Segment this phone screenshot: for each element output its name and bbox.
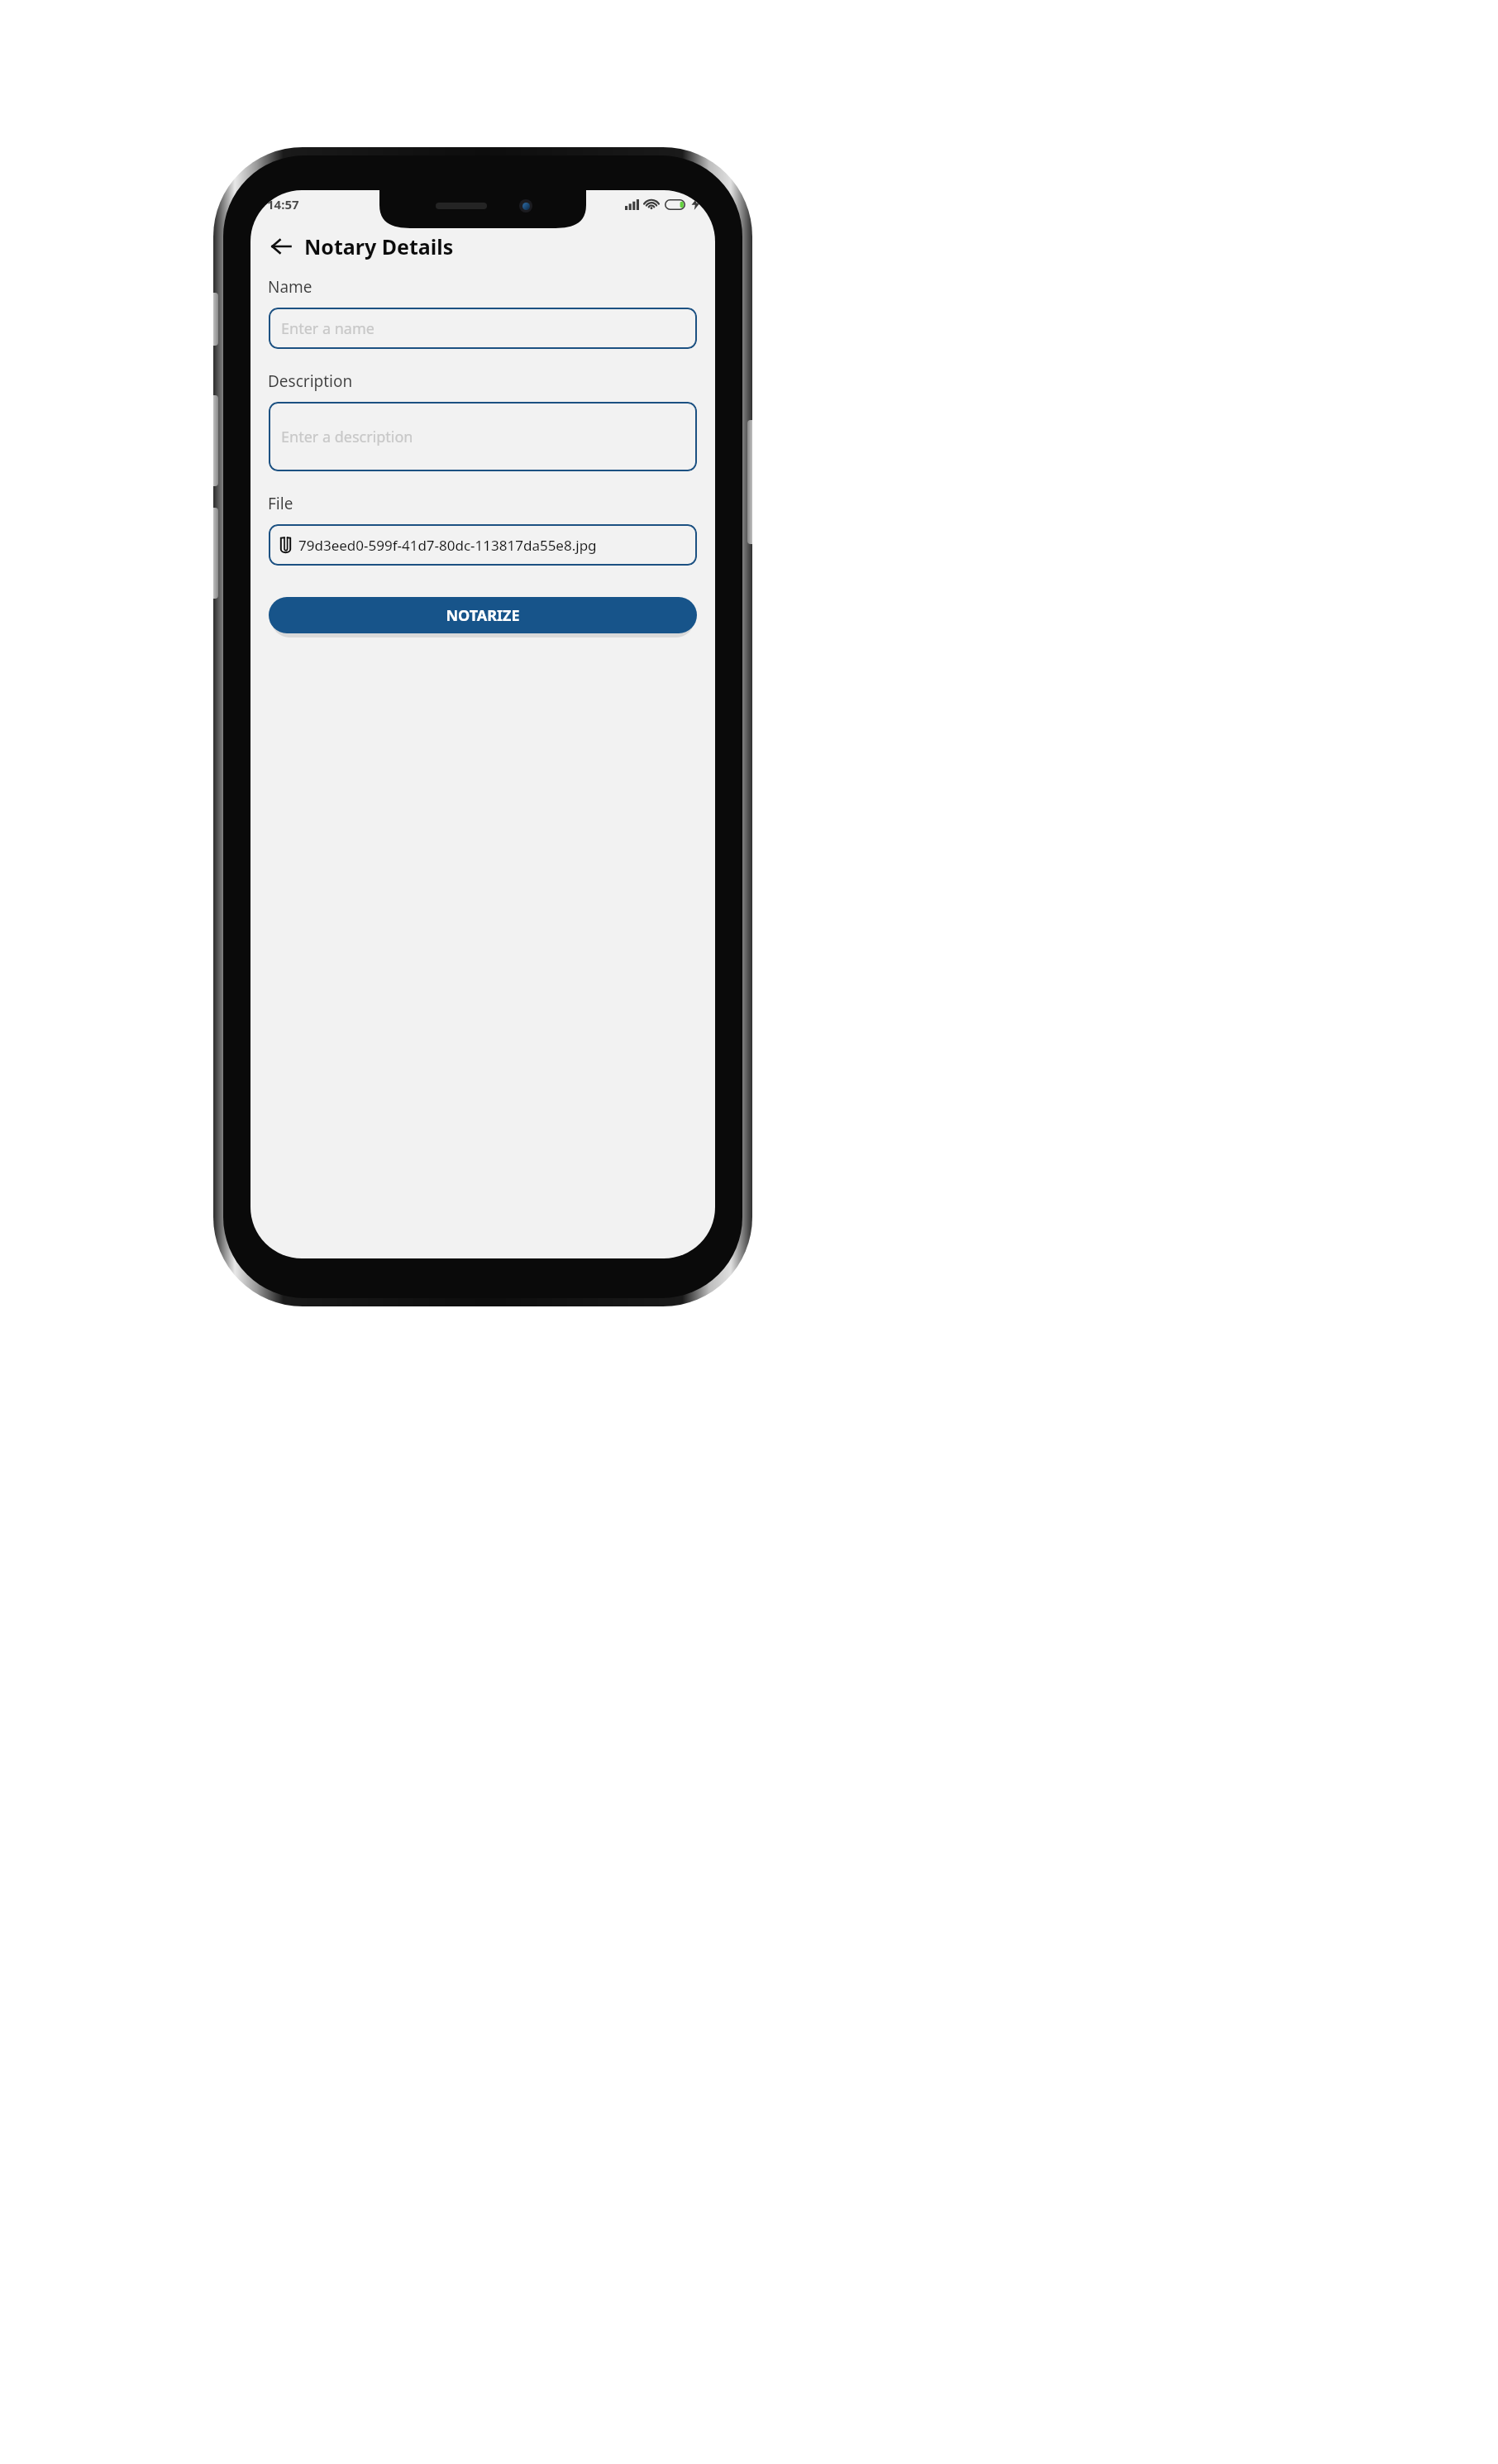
staticText: Notary Details [304,232,454,260]
staticText: 14:57 [267,196,299,212]
button[interactable]: 79d3eed0-599f-41d7-80dc-113817da55e8.jpg [269,524,697,566]
staticText: Name [268,276,312,298]
button[interactable]: Enter a description [269,402,697,471]
staticText: Description [268,370,353,392]
button[interactable]: NOTARIZE [269,597,697,633]
staticText: NOTARIZE [446,605,520,626]
button[interactable]: Back [267,232,295,260]
staticText: Enter a name [281,318,374,339]
staticText: 79d3eed0-599f-41d7-80dc-113817da55e8.jpg [298,536,597,555]
staticText: File [268,493,293,514]
button[interactable]: Enter a name [269,308,697,349]
staticText: Enter a description [281,427,413,447]
